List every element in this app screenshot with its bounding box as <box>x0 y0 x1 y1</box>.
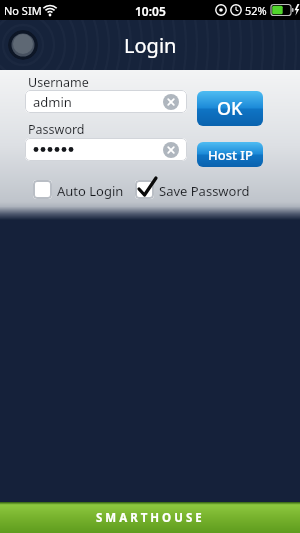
staticText: Login <box>124 32 177 59</box>
staticText: OK <box>217 96 243 121</box>
staticText: admin <box>33 93 72 111</box>
button[interactable] <box>135 180 154 199</box>
button[interactable] <box>25 138 187 161</box>
staticText: 52% <box>245 3 267 18</box>
staticText: Save Password <box>159 182 250 200</box>
button[interactable]: SMARTHOUSE <box>0 502 300 533</box>
staticText: Password <box>28 121 85 138</box>
staticText: Auto Login <box>57 182 124 200</box>
staticText: SMARTHOUSE <box>96 510 205 526</box>
button[interactable]: OK <box>197 91 263 126</box>
staticText: Host IP <box>208 146 253 164</box>
staticText: No SIM <box>4 3 42 18</box>
button[interactable] <box>33 180 52 199</box>
staticText: 10:05 <box>135 3 166 17</box>
staticText: Username <box>28 74 89 91</box>
button[interactable]: Host IP <box>197 142 263 167</box>
button[interactable] <box>8 30 38 60</box>
button[interactable]: admin <box>25 90 187 113</box>
